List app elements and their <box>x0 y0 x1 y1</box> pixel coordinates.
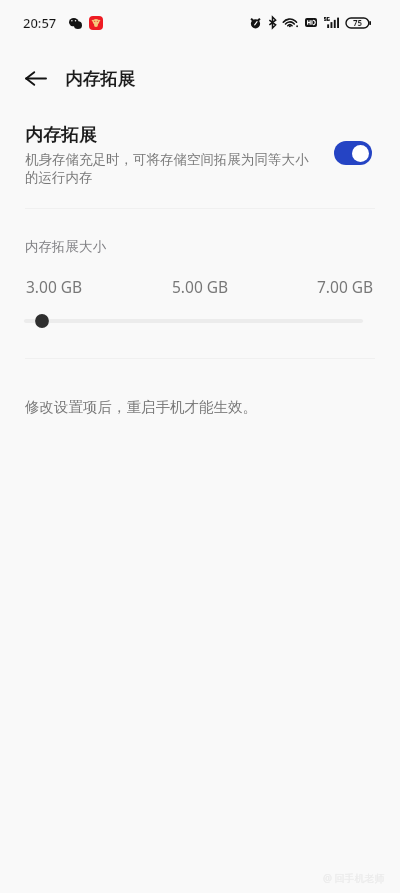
button[interactable]: Back <box>17 60 54 97</box>
staticText: 5.00 GB <box>172 276 229 297</box>
staticText: @ 回手机老师 <box>323 871 385 885</box>
staticText: 3.00 GB <box>26 276 83 297</box>
staticText: 内存拓展大小 <box>25 238 106 255</box>
button[interactable]: 内存拓展 <box>65 68 135 90</box>
button[interactable]: 内存拓展 <box>0 120 400 194</box>
staticText: 修改设置项后，重启手机才能生效。 <box>25 398 257 416</box>
staticText: 75 <box>353 17 363 28</box>
staticText: 20:57 <box>23 14 57 32</box>
staticText: 内存拓展 <box>25 124 97 147</box>
button[interactable]: 内存拓展大小 <box>0 308 400 334</box>
button[interactable]: 内存拓展开关 <box>334 141 372 165</box>
staticText: 7.00 GB <box>317 276 374 297</box>
staticText: 机身存储充足时，可将存储空间拓展为同等大小的运行内存 <box>25 151 313 186</box>
